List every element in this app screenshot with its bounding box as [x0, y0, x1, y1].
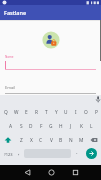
- staticText: Name: [5, 55, 14, 59]
- button[interactable]: E: [21, 105, 31, 119]
- staticText: K: [80, 123, 83, 130]
- button[interactable]: R: [31, 105, 41, 119]
- staticText: ?123: [4, 152, 13, 157]
- button[interactable]: [4, 54, 97, 71]
- staticText: A: [9, 123, 13, 130]
- button[interactable]: N: [66, 133, 76, 147]
- staticText: Email: [5, 85, 16, 90]
- staticText: C: [39, 137, 43, 144]
- button[interactable]: [20, 165, 34, 180]
- staticText: L: [90, 123, 93, 130]
- staticText: O: [84, 109, 88, 116]
- button[interactable]: [68, 165, 82, 180]
- button[interactable]: Y: [51, 105, 61, 119]
- button[interactable]: A: [5, 119, 16, 133]
- staticText: E: [25, 109, 28, 116]
- staticText: G: [49, 123, 53, 130]
- staticText: R: [35, 109, 38, 116]
- staticText: X: [30, 137, 33, 144]
- button[interactable]: [86, 148, 97, 159]
- staticText: ,: [18, 149, 20, 157]
- staticText: D: [29, 123, 33, 130]
- staticText: Fastlane: [4, 9, 27, 16]
- button[interactable]: F: [36, 119, 46, 133]
- staticText: V: [50, 137, 53, 144]
- staticText: N: [69, 137, 73, 144]
- staticText: F: [40, 123, 43, 130]
- button[interactable]: M: [76, 133, 86, 147]
- button[interactable]: D: [26, 119, 36, 133]
- button[interactable]: I: [71, 105, 81, 119]
- button[interactable]: [86, 133, 101, 147]
- button[interactable]: X: [26, 133, 36, 147]
- button[interactable]: P: [91, 105, 101, 119]
- staticText: T: [45, 109, 48, 116]
- staticText: Q: [4, 109, 8, 116]
- staticText: P: [95, 109, 98, 116]
- button[interactable]: J: [66, 119, 76, 133]
- button[interactable]: Q: [0, 105, 11, 119]
- button[interactable]: L: [86, 119, 96, 133]
- staticText: I: [75, 109, 77, 116]
- button[interactable]: V: [46, 133, 56, 147]
- button[interactable]: G: [46, 119, 56, 133]
- button[interactable]: B: [56, 133, 66, 147]
- staticText: Y: [55, 109, 58, 116]
- staticText: B: [59, 137, 63, 144]
- button[interactable]: H: [56, 119, 66, 133]
- button[interactable]: T: [41, 105, 51, 119]
- button[interactable]: O: [81, 105, 91, 119]
- button[interactable]: [0, 133, 16, 147]
- button[interactable]: [44, 165, 58, 180]
- staticText: U: [64, 109, 68, 116]
- button[interactable]: Z: [16, 133, 26, 147]
- staticText: H: [59, 123, 63, 130]
- button[interactable]: C: [36, 133, 46, 147]
- button[interactable]: W: [11, 105, 21, 119]
- button[interactable]: K: [76, 119, 86, 133]
- staticText: M: [79, 137, 84, 144]
- staticText: Z: [20, 137, 23, 144]
- staticText: J: [70, 123, 72, 130]
- button[interactable]: S: [16, 119, 26, 133]
- staticText: W: [14, 109, 19, 116]
- staticText: S: [20, 123, 23, 130]
- button[interactable]: U: [61, 105, 71, 119]
- button[interactable]: [4, 83, 97, 95]
- button[interactable]: ?123: [1, 147, 16, 162]
- staticText: .: [76, 148, 78, 156]
- button[interactable]: Fastlane: [0, 5, 101, 20]
